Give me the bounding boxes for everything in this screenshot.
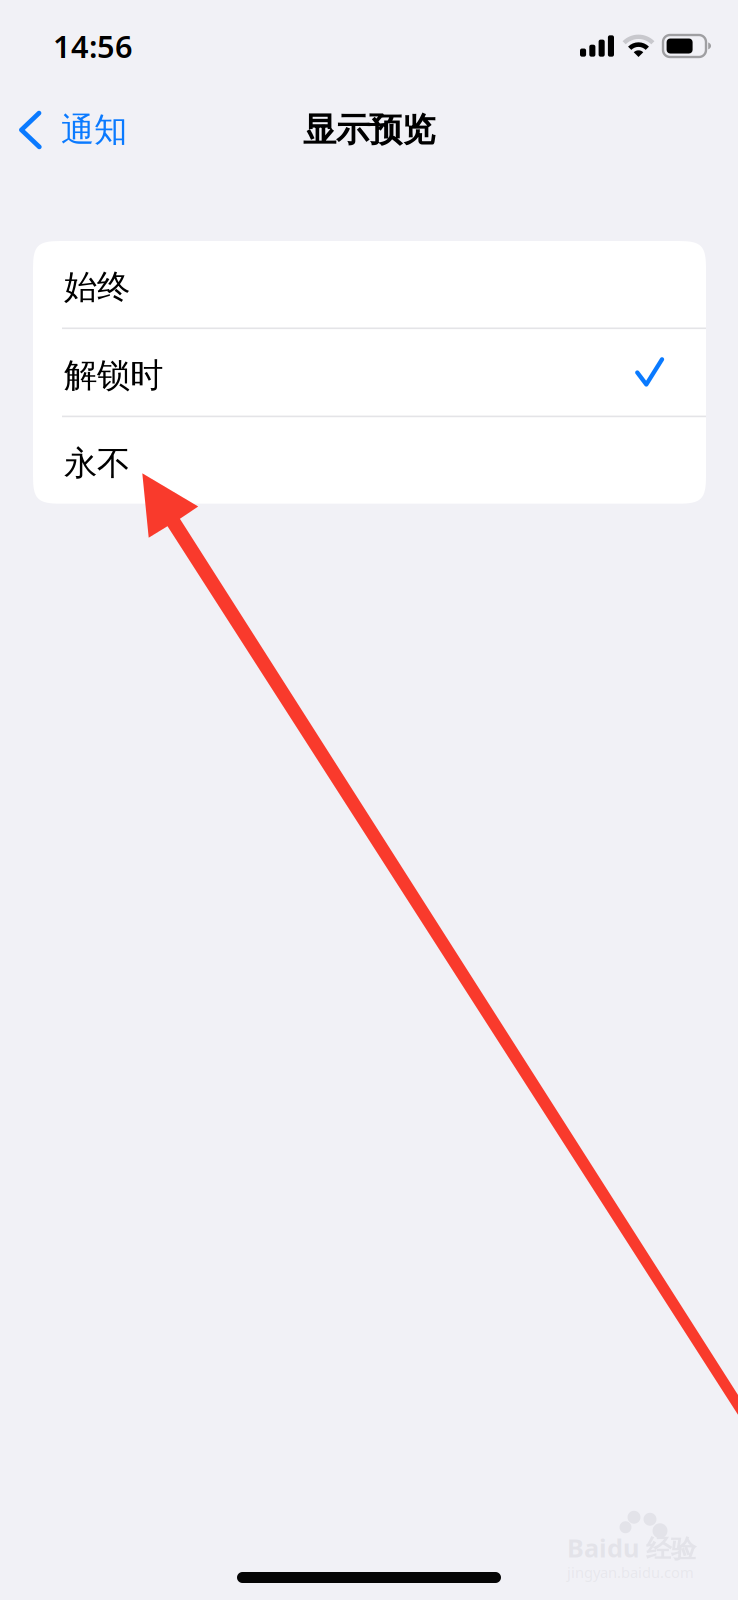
staticText: 通知	[61, 109, 127, 150]
staticText: 永不	[64, 443, 130, 484]
staticText: 解锁时	[64, 355, 163, 396]
button[interactable]: 永不	[33, 417, 706, 504]
staticText: 显示预览	[303, 109, 435, 150]
button[interactable]: 解锁时	[33, 329, 706, 416]
staticText: 14:56	[53, 26, 133, 66]
staticText: 始终	[64, 267, 130, 308]
staticText: Baidu 经验	[567, 1531, 696, 1565]
button[interactable]: 始终	[33, 241, 706, 327]
button[interactable]: 通知	[0, 97, 143, 162]
